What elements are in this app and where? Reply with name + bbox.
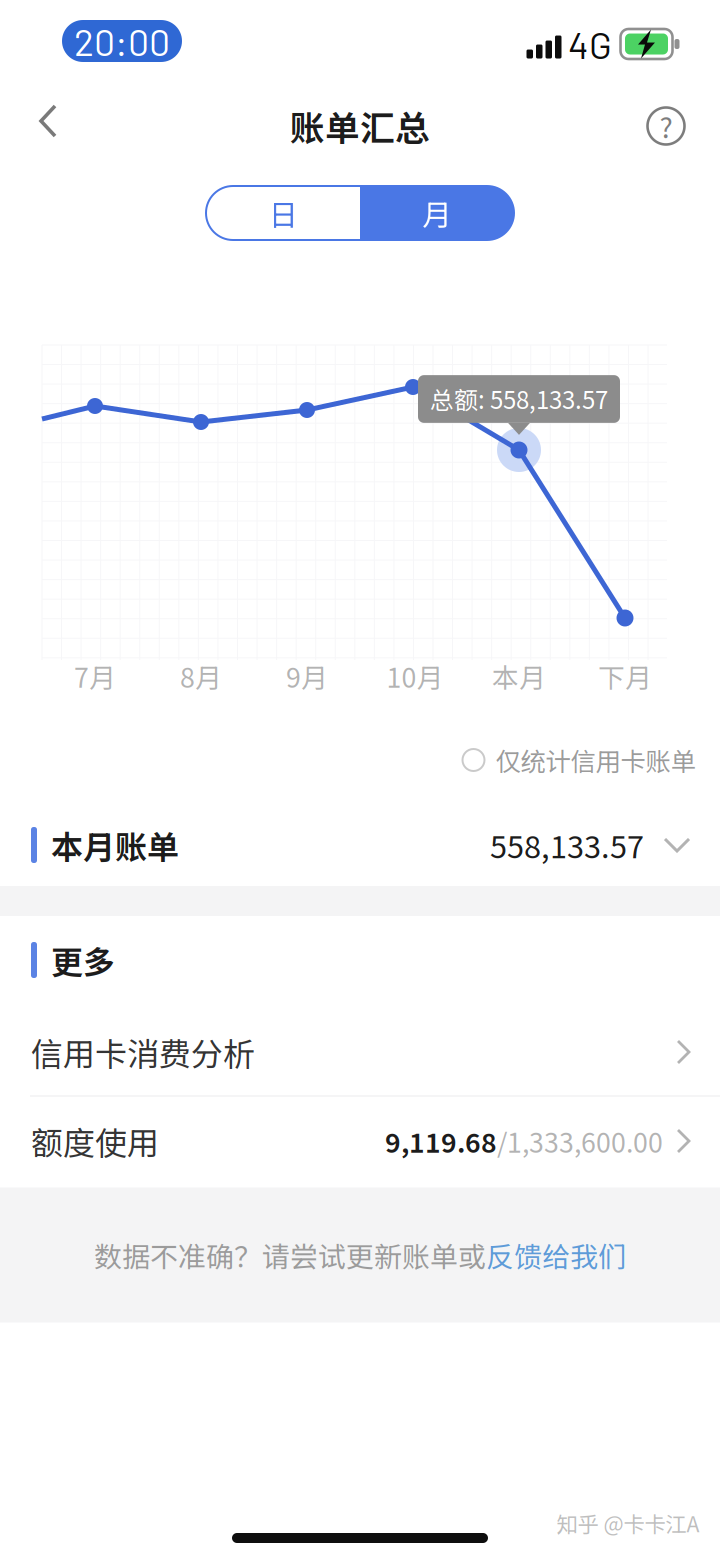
- staticText: 日: [268, 192, 297, 234]
- staticText: 反馈给我们: [486, 1235, 626, 1275]
- staticText: 信用卡消费分析: [31, 1029, 255, 1075]
- button[interactable]: 仅统计信用卡账单: [456, 738, 701, 782]
- staticText: 20:00: [74, 19, 170, 63]
- staticText: 额度使用: [31, 1118, 159, 1164]
- staticText: 7月: [74, 657, 116, 695]
- button[interactable]: Back: [11, 83, 87, 161]
- staticText: 10月: [386, 657, 443, 695]
- staticText: 更多: [51, 937, 115, 983]
- staticText: 仅统计信用卡账单: [495, 742, 695, 778]
- staticText: 558,133.57: [490, 823, 644, 867]
- button[interactable]: 日: [206, 186, 360, 240]
- staticText: 本月账单: [51, 822, 179, 868]
- button[interactable]: 信用卡消费分析: [0, 1008, 720, 1096]
- button[interactable]: 月: [360, 186, 514, 240]
- staticText: ?: [659, 106, 672, 146]
- staticText: 总额: 558,133.57: [430, 381, 608, 416]
- staticText: 8月: [180, 657, 222, 695]
- button[interactable]: 本月账单: [0, 800, 720, 890]
- staticText: 本月: [492, 657, 546, 695]
- staticText: /1,333,600.00: [497, 1122, 663, 1160]
- staticText: 4G: [568, 22, 612, 66]
- staticText: 账单汇总: [290, 101, 430, 151]
- staticText: 下月: [598, 657, 652, 695]
- button[interactable]: 反馈给我们: [486, 1235, 626, 1275]
- staticText: 数据不准确？请尝试更新账单或: [94, 1235, 486, 1275]
- staticText: 9,119.68: [385, 1122, 497, 1160]
- staticText: 9月: [286, 657, 328, 695]
- button[interactable]: 额度使用: [0, 1097, 720, 1185]
- staticText: 月: [422, 192, 451, 234]
- button[interactable]: Help: [628, 87, 704, 165]
- staticText: 知乎 @卡卡江A: [556, 1508, 699, 1538]
